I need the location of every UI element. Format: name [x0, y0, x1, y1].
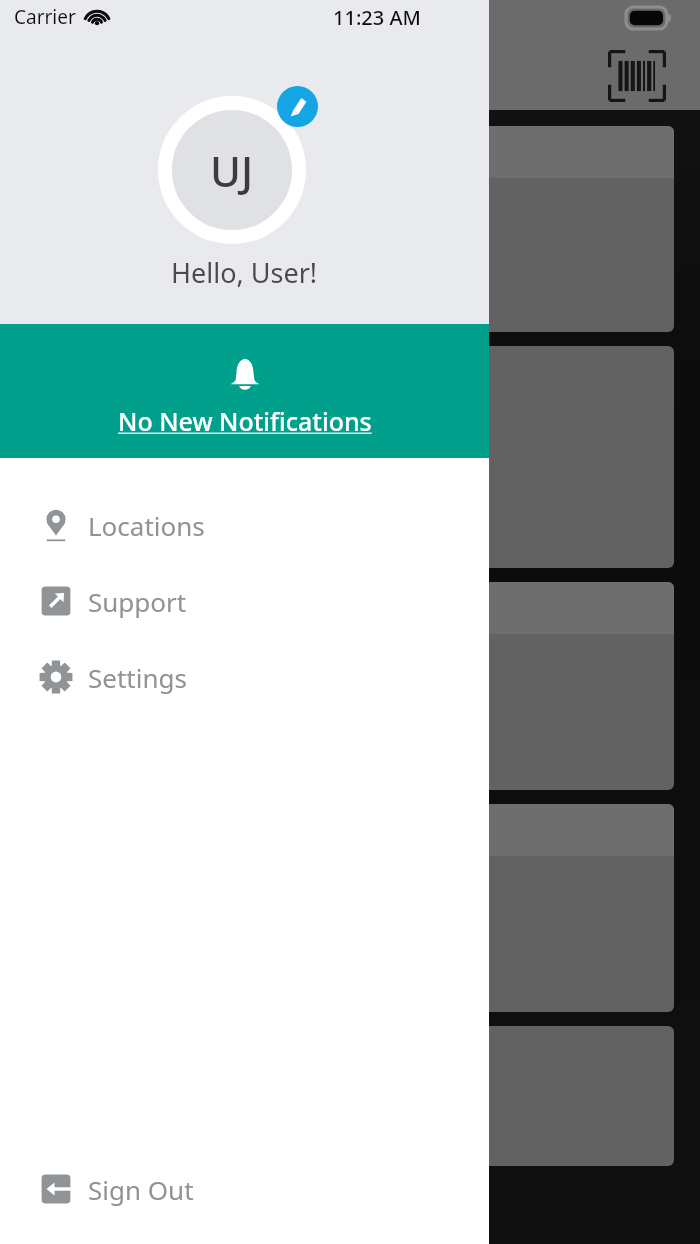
staticText: Sign Out	[88, 1172, 194, 1207]
button[interactable]: G GUIDANCE	[0, 582, 674, 790]
staticText: Locations	[88, 508, 205, 543]
staticText: Support	[88, 584, 187, 619]
staticText: No New Notifications	[118, 404, 372, 438]
staticText: 11:23 AM	[333, 4, 421, 31]
button[interactable]: Scan barcode	[608, 50, 666, 102]
button[interactable]: Edit profile	[277, 86, 318, 127]
staticText: Hello, User!	[171, 254, 318, 291]
button[interactable]: DEALS	[0, 804, 674, 1012]
button[interactable]: Profile avatar	[158, 96, 306, 244]
button[interactable]	[0, 346, 674, 568]
button[interactable]: Settings	[0, 654, 489, 700]
staticText: Carrier	[14, 4, 76, 30]
button[interactable]: Support	[0, 578, 489, 624]
staticText: Settings	[88, 660, 187, 695]
staticText: UJ	[210, 142, 254, 199]
button[interactable]: E FRIENDS	[0, 126, 674, 332]
staticText: G GUIDANCE	[8, 591, 165, 625]
button[interactable]	[0, 1026, 674, 1166]
button[interactable]: Sign Out	[0, 1166, 489, 1212]
button[interactable]: Locations	[0, 502, 489, 548]
button[interactable]: No New Notifications	[0, 324, 489, 458]
